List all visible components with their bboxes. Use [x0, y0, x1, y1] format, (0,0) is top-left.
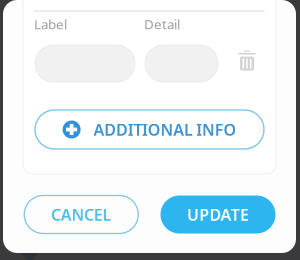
staticText: UPDATE [187, 204, 249, 225]
button[interactable]: CANCEL [24, 195, 138, 233]
staticText: CANCEL [51, 204, 111, 225]
button[interactable]: ADDITIONAL INFO [35, 110, 264, 149]
staticText: Detail [144, 15, 180, 33]
button[interactable]: UPDATE [160, 195, 275, 233]
staticText: Label [34, 15, 67, 33]
staticText: ADDITIONAL INFO [94, 119, 236, 140]
button[interactable]: Delete row [232, 42, 262, 76]
